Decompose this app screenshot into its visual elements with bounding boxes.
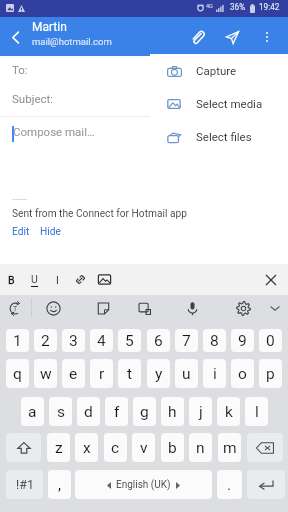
button[interactable]: 7 [175, 329, 198, 352]
button[interactable]: B [0, 264, 23, 295]
staticText: m [223, 439, 237, 457]
button[interactable]: Capture [150, 54, 288, 87]
button[interactable]: d [77, 397, 100, 426]
staticText: e [69, 365, 78, 383]
staticText: q [13, 365, 22, 383]
button[interactable]: 8 [203, 329, 226, 352]
staticText: 1 [13, 332, 22, 350]
button[interactable]: 3 [62, 329, 85, 352]
button[interactable]: v [132, 433, 155, 462]
staticText: o [238, 365, 247, 383]
button[interactable]: Stickers [90, 295, 116, 321]
button[interactable]: Shift [6, 433, 41, 462]
staticText: 4G [206, 3, 213, 9]
button[interactable]: 9 [231, 329, 254, 352]
staticText: s [57, 403, 65, 421]
button[interactable] [69, 264, 92, 295]
staticText: 6 [154, 332, 163, 350]
staticText: English (UK) [116, 479, 171, 491]
staticText: 7 [182, 332, 191, 350]
button[interactable]: f [105, 397, 128, 426]
button[interactable]: GIF [131, 295, 157, 321]
button[interactable]: m [218, 433, 241, 462]
button[interactable]: k [217, 397, 240, 426]
button[interactable]: y [147, 359, 170, 388]
button[interactable]: r [90, 359, 113, 388]
staticText: z [55, 439, 63, 457]
staticText: B [8, 274, 15, 286]
button[interactable]: . [217, 470, 242, 499]
button[interactable]: Back [4, 26, 26, 48]
button[interactable]: e [62, 359, 85, 388]
button[interactable]: Enter [247, 470, 285, 499]
button[interactable]: Hide [40, 226, 61, 238]
button[interactable]: l [245, 397, 268, 426]
staticText: 5 [125, 332, 134, 350]
staticText: g [140, 403, 149, 421]
button[interactable]: Keyboard settings [230, 295, 256, 321]
staticText: Edit [12, 226, 30, 238]
button[interactable]: w [34, 359, 57, 388]
button[interactable]: a [21, 397, 44, 426]
staticText: c [111, 439, 120, 457]
staticText: Sent from the Connect for Hotmail app [12, 208, 187, 220]
staticText: t [127, 365, 133, 383]
button[interactable]: I [46, 264, 69, 295]
button[interactable]: 5 [118, 329, 141, 352]
staticText: U [31, 273, 38, 285]
staticText: 8 [210, 332, 219, 350]
staticText: 36% [230, 2, 246, 12]
button[interactable]: U [23, 264, 46, 295]
button[interactable]: English (UK) [75, 470, 212, 499]
button[interactable]: Emoji [40, 295, 66, 321]
button[interactable]: u [175, 359, 198, 388]
button[interactable]: 0 [259, 329, 282, 352]
button[interactable]: t [118, 359, 141, 388]
staticText: j [199, 403, 203, 421]
staticText: 2 [41, 332, 50, 350]
button[interactable]: 4 [90, 329, 113, 352]
button[interactable]: j [189, 397, 212, 426]
button[interactable]: q [6, 359, 29, 388]
staticText: . [227, 476, 232, 494]
staticText: Hide [40, 226, 61, 238]
button[interactable]: s [49, 397, 72, 426]
button[interactable]: p [259, 359, 282, 388]
staticText: mail@hotmail.com [32, 36, 112, 47]
button[interactable]: x [75, 433, 98, 462]
button[interactable]: 6 [147, 329, 170, 352]
staticText: Compose mail… [13, 125, 95, 138]
staticText: r [99, 365, 105, 383]
staticText: Capture [196, 64, 237, 77]
button[interactable]: Select files [150, 120, 288, 153]
button[interactable]: Translate [2, 295, 28, 321]
button[interactable]: n [189, 433, 212, 462]
button[interactable]: Send [220, 25, 244, 49]
button[interactable]: Edit [12, 226, 30, 238]
staticText: f [114, 403, 120, 421]
button[interactable]: c [104, 433, 127, 462]
staticText: 19:42 [259, 2, 280, 12]
button[interactable]: h [161, 397, 184, 426]
button[interactable]: Hide keyboard [262, 295, 288, 321]
button[interactable]: g [133, 397, 156, 426]
button[interactable]: !#1 [6, 470, 43, 499]
staticText: T [13, 305, 18, 313]
button[interactable]: , [48, 470, 71, 499]
button[interactable] [93, 264, 116, 295]
button[interactable]: Voice input [179, 295, 205, 321]
button[interactable]: b [161, 433, 184, 462]
button[interactable]: 1 [6, 329, 29, 352]
staticText: n [196, 439, 205, 457]
button[interactable]: More options [255, 25, 279, 49]
button[interactable]: o [231, 359, 254, 388]
button[interactable]: i [203, 359, 226, 388]
button[interactable]: 2 [34, 329, 57, 352]
button[interactable]: Close formatting toolbar [258, 264, 284, 295]
button[interactable]: Attach file [186, 25, 210, 49]
staticText: v [140, 439, 148, 457]
button[interactable]: Select media [150, 87, 288, 120]
button[interactable]: z [47, 433, 70, 462]
button[interactable]: Backspace [247, 433, 283, 462]
staticText: Martin [32, 20, 67, 34]
